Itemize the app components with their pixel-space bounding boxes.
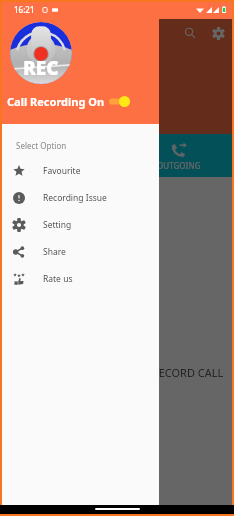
staticText: Favourite bbox=[43, 165, 81, 177]
staticText: OUTGOING bbox=[157, 160, 201, 171]
staticText: 16:21 bbox=[14, 4, 35, 15]
staticText: Call Recording On bbox=[7, 94, 105, 109]
button[interactable]: Recording Issue bbox=[2, 184, 159, 211]
button[interactable]: Favourite bbox=[2, 157, 159, 184]
button[interactable]: OUTGOING bbox=[140, 134, 218, 177]
staticText: Share bbox=[43, 246, 66, 258]
button[interactable]: Rate us bbox=[2, 265, 159, 292]
staticText: Select Option bbox=[16, 140, 67, 151]
button[interactable]: Share bbox=[2, 238, 159, 265]
staticText: REC bbox=[23, 55, 59, 81]
button[interactable]: Call recording toggle bbox=[109, 96, 130, 107]
staticText: Rate us bbox=[43, 273, 73, 285]
staticText: NO RECORD CALL bbox=[132, 365, 224, 380]
staticText: Recording Issue bbox=[43, 192, 107, 204]
button[interactable]: Search bbox=[179, 23, 201, 43]
staticText: Setting bbox=[43, 219, 72, 231]
button[interactable]: Settings bbox=[207, 23, 229, 43]
button[interactable]: Setting bbox=[2, 211, 159, 238]
